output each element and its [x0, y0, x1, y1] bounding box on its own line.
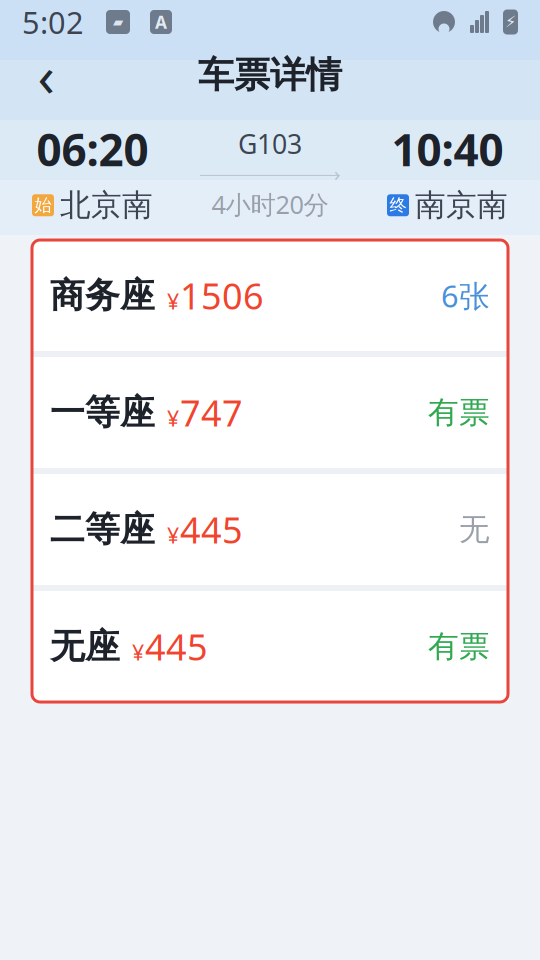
staticText: 6张 [441, 275, 490, 316]
staticText: 一等座 [50, 391, 155, 434]
staticText: ¥ [132, 638, 144, 666]
staticText: 4小时20分 [211, 187, 328, 221]
staticText: 无 [459, 511, 490, 548]
staticText: ¥ [167, 287, 179, 315]
staticText: 445 [145, 623, 208, 670]
staticText: 747 [180, 389, 243, 436]
staticText: ‹ [37, 38, 54, 112]
staticText: 车票详情 [198, 53, 342, 97]
staticText: 06:20 [36, 120, 148, 178]
button[interactable]: Back [16, 46, 76, 104]
staticText: 10:40 [391, 120, 503, 178]
staticText: 无座 [50, 625, 120, 668]
staticText: ⚡︎ [505, 13, 516, 31]
staticText: 有票 [428, 394, 490, 431]
staticText: 5:02 [22, 2, 84, 42]
button[interactable]: 商务座 [32, 240, 508, 351]
staticText: A [155, 10, 167, 33]
staticText: ¥ [167, 404, 179, 432]
button[interactable]: 无座 [32, 591, 508, 702]
staticText: 二等座 [50, 508, 155, 551]
staticText: 1506 [180, 272, 264, 319]
staticText: 有票 [428, 628, 490, 665]
staticText: ▰ [113, 14, 123, 29]
button[interactable]: 一等座 [32, 357, 508, 468]
staticText: › [334, 160, 340, 187]
staticText: 南京南 [415, 186, 508, 224]
staticText: 445 [180, 506, 243, 553]
staticText: ¥ [167, 521, 179, 549]
staticText: 商务座 [50, 274, 155, 317]
button[interactable]: 二等座 [32, 474, 508, 585]
staticText: 终 [389, 195, 406, 216]
staticText: G103 [238, 126, 302, 161]
staticText: 始 [34, 195, 51, 216]
staticText: 北京南 [60, 186, 153, 224]
